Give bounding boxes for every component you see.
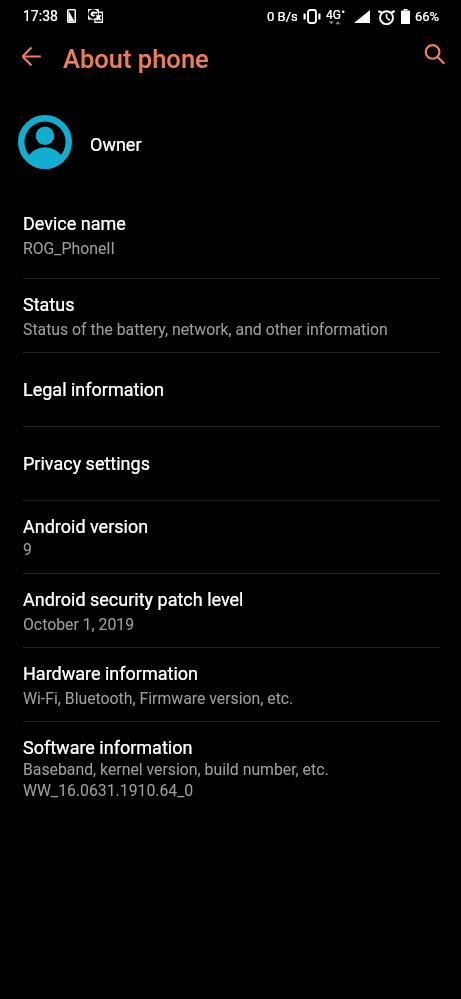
button[interactable]: Status bbox=[0, 278, 461, 352]
button[interactable]: Android security patch level bbox=[0, 573, 461, 647]
staticText: Wi-Fi, Bluetooth, Firmware version, etc. bbox=[23, 689, 294, 708]
staticText: Software information bbox=[23, 737, 193, 758]
staticText: Baseband, kernel version, build number, … bbox=[23, 760, 329, 800]
staticText: ROG_PhoneII bbox=[23, 239, 115, 258]
button[interactable]: Owner bbox=[0, 88, 461, 197]
button[interactable]: Search bbox=[414, 34, 456, 76]
staticText: 4G bbox=[326, 8, 341, 22]
staticText: Owner bbox=[90, 134, 142, 155]
button[interactable]: Android version bbox=[0, 500, 461, 573]
staticText: Status of the battery, network, and othe… bbox=[23, 320, 388, 339]
staticText: About phone bbox=[63, 44, 209, 74]
button[interactable]: Privacy settings bbox=[0, 426, 461, 500]
staticText: Status bbox=[23, 294, 75, 315]
button[interactable]: Hardware information bbox=[0, 647, 461, 721]
button[interactable]: Software information bbox=[0, 721, 461, 831]
staticText: Android security patch level bbox=[23, 589, 244, 610]
staticText: 9 bbox=[23, 540, 32, 559]
staticText: October 1, 2019 bbox=[23, 615, 135, 634]
button[interactable]: Legal information bbox=[0, 352, 461, 426]
button[interactable]: Back bbox=[10, 35, 52, 77]
staticText: Device name bbox=[23, 213, 126, 234]
button[interactable]: Device name bbox=[0, 197, 461, 278]
staticText: 17:38 bbox=[23, 8, 58, 24]
staticText: 66% bbox=[415, 9, 440, 24]
staticText: Hardware information bbox=[23, 663, 198, 684]
staticText: Privacy settings bbox=[23, 453, 150, 474]
staticText: Legal information bbox=[23, 379, 164, 400]
staticText: Android version bbox=[23, 516, 149, 537]
staticText: 0 B/s bbox=[267, 9, 298, 24]
